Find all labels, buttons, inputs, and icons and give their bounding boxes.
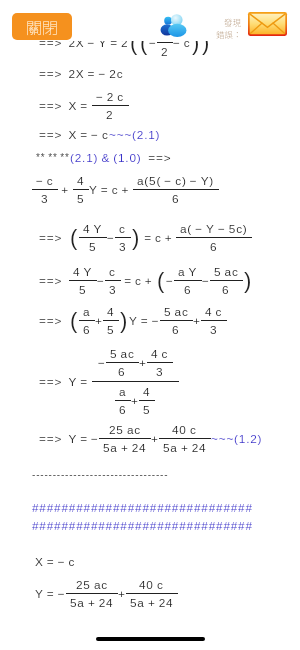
staticText: ( [70, 308, 78, 333]
staticText: = c + [121, 274, 156, 287]
staticText: 5 [79, 283, 87, 296]
staticText: ############################## [32, 519, 253, 532]
staticText: (2.1) & (1.0) [70, 151, 142, 164]
staticText: 5 ac [214, 265, 239, 278]
staticText: ( [140, 30, 148, 55]
staticText: ==> 2X − Y = 2 [39, 36, 129, 49]
staticText: 6 [83, 323, 91, 336]
staticText: + [58, 183, 73, 196]
staticText: + [151, 432, 159, 445]
staticText: 4 [143, 385, 151, 398]
staticText: ~~~(2.1) [109, 128, 161, 141]
staticText: Y = − [129, 314, 160, 327]
staticText: c [161, 27, 168, 40]
staticText: a( − Y − 5c) [180, 222, 248, 235]
staticText: ) [202, 30, 210, 55]
staticText: − [107, 231, 115, 244]
staticText: 4 [77, 174, 85, 187]
staticText: − c [36, 174, 54, 187]
staticText: − [202, 274, 210, 287]
button[interactable]: 關閉 [12, 13, 72, 40]
staticText: ) [132, 225, 140, 250]
staticText: 25 ac [76, 578, 108, 591]
staticText: − c [173, 36, 191, 49]
staticText: 關閉 [26, 15, 59, 38]
staticText: 5 [143, 403, 151, 416]
staticText: − [98, 356, 106, 369]
staticText: 40 c [172, 423, 197, 436]
staticText: ==> [142, 151, 172, 164]
staticText: a [83, 305, 91, 318]
staticText: 4 [107, 305, 115, 318]
staticText: 4 c [205, 305, 223, 318]
staticText: ( [157, 268, 165, 293]
staticText: 3 [109, 283, 117, 296]
button[interactable]: Contacts [160, 13, 187, 37]
staticText: ==> [39, 314, 69, 327]
staticText: 6 [172, 323, 180, 336]
staticText: 錯誤： [216, 28, 242, 40]
staticText: 5a + 24 [130, 596, 174, 609]
staticText: ==> X = − c [39, 128, 109, 141]
button[interactable]: Report error by mail [248, 12, 287, 36]
staticText: 6 [172, 192, 180, 205]
staticText: − 2 c [96, 90, 125, 103]
staticText: 6 [184, 283, 192, 296]
staticText: ############################## [32, 501, 253, 514]
staticText: a [119, 385, 127, 398]
staticText: 6 [119, 403, 127, 416]
staticText: 5 [89, 240, 97, 253]
staticText: + [131, 394, 139, 407]
staticText: 6 [118, 365, 126, 378]
staticText: − [149, 36, 157, 49]
staticText: ==> Y = [39, 375, 92, 388]
staticText: + [95, 314, 103, 327]
staticText: 3 [41, 192, 49, 205]
staticText: ==> 2X = − 2c [39, 67, 124, 80]
staticText: Y = − [35, 587, 66, 600]
staticText: 4 Y [83, 222, 103, 235]
staticText: 5a + 24 [70, 596, 114, 609]
staticText: 6 [210, 240, 218, 253]
staticText: ) [192, 30, 200, 55]
staticText: 6 [222, 283, 230, 296]
staticText: 5a + 24 [103, 441, 147, 454]
staticText: a(5( − c) − Y) [137, 174, 215, 187]
staticText: c [109, 265, 116, 278]
staticText: = c + [141, 231, 176, 244]
staticText: 發現 [224, 16, 242, 28]
staticText: 3 [210, 323, 218, 336]
staticText: ( [70, 225, 78, 250]
staticText: 25 ac [109, 423, 141, 436]
staticText: ==> [39, 274, 69, 287]
staticText: ) [120, 308, 128, 333]
staticText: ~~~(1.2) [211, 432, 263, 445]
staticText: 4 Y [73, 265, 93, 278]
staticText: X = − c [35, 555, 76, 568]
staticText: --------------------------------- [32, 469, 169, 480]
staticText: 5a + 24 [163, 441, 207, 454]
staticText: − [97, 274, 105, 287]
staticText: ==> [39, 231, 69, 244]
staticText: ==> Y = − [39, 432, 99, 445]
staticText: a Y [178, 265, 198, 278]
staticText: − [166, 274, 174, 287]
staticText: 5 ac [110, 347, 135, 360]
staticText: 5 ac [164, 305, 189, 318]
staticText: 3 [156, 365, 164, 378]
staticText: 2 [161, 45, 169, 58]
staticText: 4 c [151, 347, 169, 360]
staticText: + [118, 587, 126, 600]
staticText: c [119, 222, 126, 235]
staticText: ) [244, 268, 252, 293]
staticText: ( [130, 30, 138, 55]
staticText: 2 [106, 108, 114, 121]
staticText: Y = c + [89, 183, 133, 196]
staticText: 3 [119, 240, 127, 253]
staticText: 5 [77, 192, 85, 205]
staticText: ** ** ** [36, 152, 70, 163]
staticText: 40 c [139, 578, 164, 591]
staticText: 5 [107, 323, 115, 336]
staticText: ==> X = [39, 99, 92, 112]
staticText: + [193, 314, 201, 327]
